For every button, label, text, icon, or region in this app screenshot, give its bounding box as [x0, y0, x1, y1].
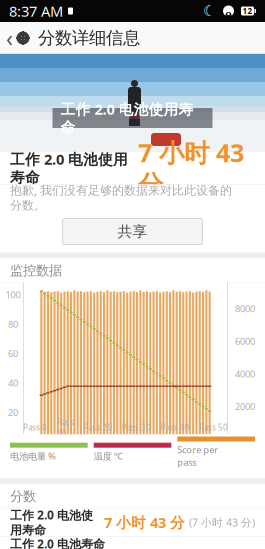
- staticText: 12: [242, 6, 252, 16]
- staticText: 工作 2.0 电池使用寿命: [10, 507, 93, 538]
- staticText: 2000: [235, 400, 255, 412]
- staticText: 温度 ℃: [94, 450, 123, 462]
- staticText: 80: [8, 318, 18, 330]
- staticText: (7 小时 43 分): [189, 515, 255, 529]
- staticText: 共享: [117, 222, 147, 240]
- button[interactable]: 工作 2.0 电池使用寿命: [0, 508, 265, 536]
- staticText: 电池电量 %: [10, 450, 56, 462]
- staticText: Pass 10: [57, 417, 74, 438]
- staticText: 7 小时 43 分: [104, 512, 185, 532]
- button[interactable]: 共享: [62, 218, 202, 244]
- staticText: 工作 2.0 电池寿命: [10, 536, 105, 549]
- staticText: Pass 50: [199, 422, 228, 433]
- staticText: 8000: [235, 302, 255, 315]
- staticText: ☾: [203, 3, 216, 19]
- staticText: 6000: [235, 335, 255, 347]
- staticText: Pass 0: [23, 422, 47, 433]
- staticText: 8:37 AM: [9, 1, 63, 21]
- staticText: 工作 2.0 电池使用寿命: [60, 99, 193, 137]
- staticText: Score per pass: [177, 443, 218, 468]
- staticText: 分数: [10, 488, 36, 504]
- staticText: Pass 30: [122, 422, 151, 433]
- staticText: 抱歉, 我们没有足够的数据来对比此设备的分数。: [10, 182, 232, 213]
- staticText: 分数详细信息: [38, 27, 140, 49]
- staticText: 60: [8, 347, 18, 360]
- button[interactable]: Back: [0, 17, 30, 59]
- staticText: 4000: [235, 368, 255, 380]
- staticText: Pass 20: [83, 422, 112, 433]
- staticText: 40: [8, 377, 18, 389]
- staticText: 工作 2.0 电池使用寿命: [10, 149, 128, 187]
- staticText: 20: [8, 406, 18, 418]
- staticText: Pass 40: [160, 422, 189, 433]
- staticText: ‹: [6, 23, 13, 53]
- staticText: 100: [5, 288, 20, 301]
- staticText: 监控数据: [10, 262, 62, 279]
- staticText: 7 小时 43 分: [138, 136, 244, 200]
